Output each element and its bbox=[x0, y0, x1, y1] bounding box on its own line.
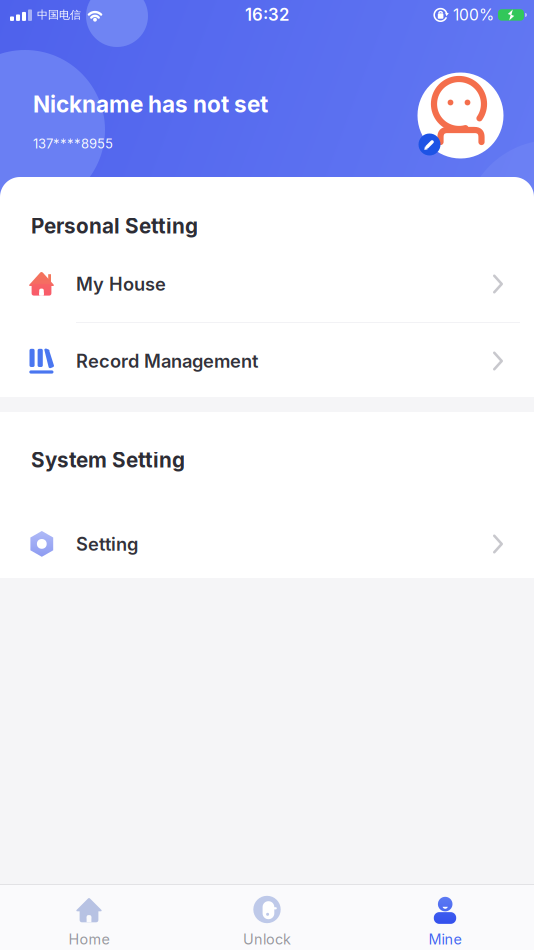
staticText: 100% bbox=[453, 5, 494, 24]
staticText: Mine bbox=[428, 930, 461, 948]
button[interactable]: Unlock tab bbox=[178, 895, 356, 948]
staticText: Nickname has not set bbox=[33, 90, 268, 118]
staticText: Unlock bbox=[243, 930, 291, 948]
staticText: 137****8955 bbox=[33, 136, 113, 152]
staticText: My House bbox=[76, 273, 166, 295]
staticText: 16:32 bbox=[245, 4, 289, 25]
button[interactable]: Profile photo bbox=[417, 72, 503, 158]
staticText: 中国电信 bbox=[37, 8, 81, 22]
button[interactable]: My House bbox=[0, 240, 534, 322]
button[interactable]: Setting bbox=[0, 509, 534, 578]
button[interactable]: Edit nickname bbox=[418, 133, 440, 155]
staticText: Setting bbox=[76, 533, 138, 555]
staticText: Personal Setting bbox=[31, 213, 198, 238]
button[interactable]: Home tab bbox=[0, 895, 178, 948]
button[interactable]: Record Management bbox=[0, 323, 534, 397]
staticText: Record Management bbox=[76, 350, 258, 372]
button[interactable]: Mine tab bbox=[356, 895, 534, 948]
staticText: Home bbox=[68, 930, 109, 948]
staticText: System Setting bbox=[31, 447, 185, 472]
